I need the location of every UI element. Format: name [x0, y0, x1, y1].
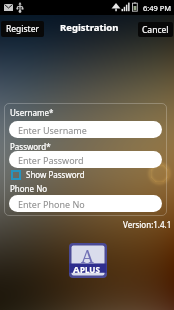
staticText: Enter Phone No	[18, 198, 85, 210]
staticText: PLUS	[80, 264, 100, 275]
staticText: Password*	[10, 141, 51, 152]
staticText: 6:49 PM	[143, 3, 172, 13]
button[interactable]: Register	[1, 21, 44, 37]
button[interactable]: A Plus logo	[69, 243, 107, 278]
button[interactable]: Show Password	[11, 169, 85, 180]
staticText: A	[73, 263, 80, 276]
button[interactable]: Enter Username	[9, 121, 162, 138]
staticText: Register	[6, 23, 39, 35]
staticText: Enter Username	[18, 124, 87, 136]
staticText: Username*	[10, 107, 54, 118]
staticText: Enter Password	[18, 154, 84, 166]
staticText: A	[81, 244, 94, 269]
button[interactable]: Enter Password	[9, 151, 162, 168]
staticText: Phone No	[10, 183, 48, 194]
staticText: Version:1.4.1	[123, 219, 172, 230]
button[interactable]: Cancel	[138, 22, 173, 37]
button[interactable]: Enter Phone No	[9, 195, 162, 212]
staticText: Show Password	[26, 169, 85, 180]
staticText: Registration	[60, 21, 119, 34]
staticText: Cancel	[142, 24, 169, 36]
